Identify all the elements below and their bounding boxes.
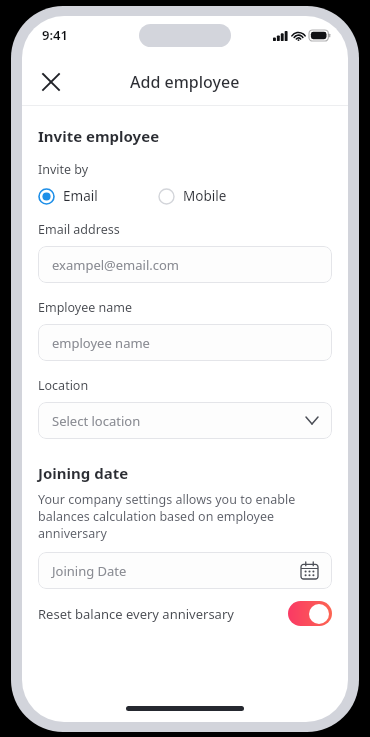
button[interactable]: Email — [38, 187, 98, 205]
staticText: 9:41 — [42, 26, 68, 44]
button[interactable]: Close — [32, 63, 70, 101]
staticText: employee name — [52, 334, 318, 352]
staticText: Add employee — [130, 71, 240, 93]
staticText: Location — [38, 377, 89, 394]
button[interactable]: Joining Date — [38, 552, 332, 589]
staticText: Reset balance every anniversary — [38, 605, 234, 623]
button[interactable]: exampel@email.com — [38, 246, 332, 283]
staticText: Select location — [52, 412, 306, 430]
staticText: Email address — [38, 221, 120, 238]
staticText: Joining date — [38, 463, 129, 483]
button[interactable]: Mobile — [158, 187, 227, 205]
button[interactable]: Select location — [38, 402, 332, 439]
staticText: Invite by — [38, 161, 89, 178]
staticText: Joining Date — [52, 562, 301, 580]
button[interactable]: employee name — [38, 324, 332, 361]
staticText: Your company settings allows you to enab… — [38, 491, 332, 542]
button[interactable]: Reset balance every anniversary toggle — [288, 601, 332, 626]
staticText: Mobile — [183, 187, 227, 205]
staticText: Email — [63, 187, 98, 205]
button[interactable]: Reset balance every anniversary — [38, 601, 332, 626]
staticText: Employee name — [38, 299, 133, 316]
staticText: exampel@email.com — [52, 256, 318, 274]
staticText: Invite employee — [38, 126, 160, 146]
